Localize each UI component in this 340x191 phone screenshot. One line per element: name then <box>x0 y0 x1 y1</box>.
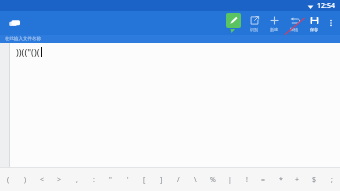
staticText: \ <box>194 175 197 185</box>
button[interactable]: Recognize <box>244 11 264 35</box>
button[interactable]: , <box>68 168 85 191</box>
button[interactable]: = <box>255 168 272 191</box>
button[interactable]: [ <box>136 168 153 191</box>
staticText: 在此输入文件名称 <box>5 36 41 42</box>
staticText: * <box>279 175 283 185</box>
button[interactable]: ( <box>0 168 17 191</box>
staticText: ))(("()( <box>16 46 40 58</box>
staticText: 撤销 <box>290 27 298 32</box>
button[interactable]: < <box>34 168 51 191</box>
staticText: ' <box>127 175 129 185</box>
staticText: + <box>295 175 300 185</box>
staticText: ! <box>246 175 248 185</box>
staticText: ) <box>24 175 27 185</box>
staticText: ] <box>160 175 163 185</box>
button[interactable]: * <box>272 168 289 191</box>
button[interactable]: / <box>170 168 187 191</box>
button[interactable]: ] <box>153 168 170 191</box>
staticText: / <box>177 175 180 185</box>
staticText: , <box>76 175 78 185</box>
staticText: [ <box>143 175 146 185</box>
button[interactable]: ) <box>17 168 34 191</box>
staticText: % <box>210 175 216 185</box>
button[interactable]: 在此输入文件名称 <box>0 35 340 43</box>
staticText: : <box>93 175 95 185</box>
button[interactable]: \ <box>187 168 204 191</box>
button[interactable]: Save <box>304 11 324 35</box>
staticText: ; <box>331 175 333 185</box>
button[interactable]: ; <box>323 168 340 191</box>
button[interactable]: ! <box>238 168 255 191</box>
button[interactable]: > <box>51 168 68 191</box>
staticText: 保存 <box>310 27 318 32</box>
staticText: 新建 <box>270 27 278 32</box>
button[interactable]: More options <box>324 11 338 35</box>
button[interactable]: : <box>85 168 102 191</box>
button[interactable]: ' <box>119 168 136 191</box>
staticText: 识别 <box>250 27 258 32</box>
button[interactable]: Files <box>6 14 24 32</box>
staticText: $ <box>312 175 317 185</box>
staticText: ( <box>7 175 10 185</box>
button[interactable]: $ <box>306 168 323 191</box>
button[interactable]: " <box>102 168 119 191</box>
button[interactable]: Edit note <box>225 13 242 33</box>
button[interactable]: New <box>264 11 284 35</box>
button[interactable]: + <box>289 168 306 191</box>
button[interactable]: % <box>204 168 221 191</box>
button[interactable]: | <box>221 168 238 191</box>
staticText: " <box>109 175 112 185</box>
button[interactable]: Undo <box>284 11 304 35</box>
staticText: > <box>57 175 62 185</box>
staticText: 12:54 <box>317 1 335 11</box>
staticText: < <box>40 175 45 185</box>
staticText: = <box>261 175 266 185</box>
staticText: | <box>228 175 232 185</box>
